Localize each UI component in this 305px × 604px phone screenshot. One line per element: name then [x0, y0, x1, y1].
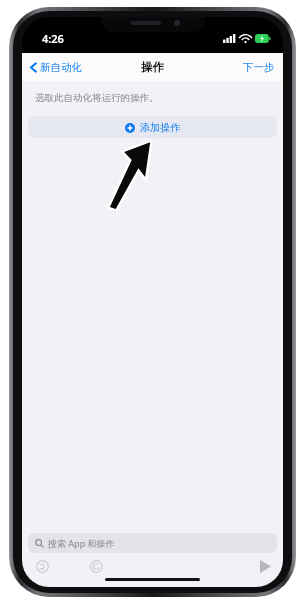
staticText: 下一步 — [243, 61, 275, 74]
button[interactable]: 搜索 App 和操作 — [28, 533, 277, 553]
staticText: 搜索 App 和操作 — [48, 537, 115, 549]
staticText: 新自动化 — [40, 61, 82, 74]
staticText: 4:26 — [42, 31, 64, 46]
button[interactable]: 下一步 — [235, 57, 283, 78]
staticText: 操作 — [141, 60, 164, 74]
staticText: 添加操作 — [140, 121, 180, 134]
staticText: 选取此自动化将运行的操作。 — [35, 92, 159, 104]
button[interactable]: Repeat — [86, 556, 107, 577]
button[interactable]: 新自动化 — [22, 57, 88, 78]
button[interactable]: Play — [256, 556, 275, 577]
button[interactable]: 添加操作 — [28, 116, 277, 138]
button[interactable]: Variables — [32, 556, 53, 577]
